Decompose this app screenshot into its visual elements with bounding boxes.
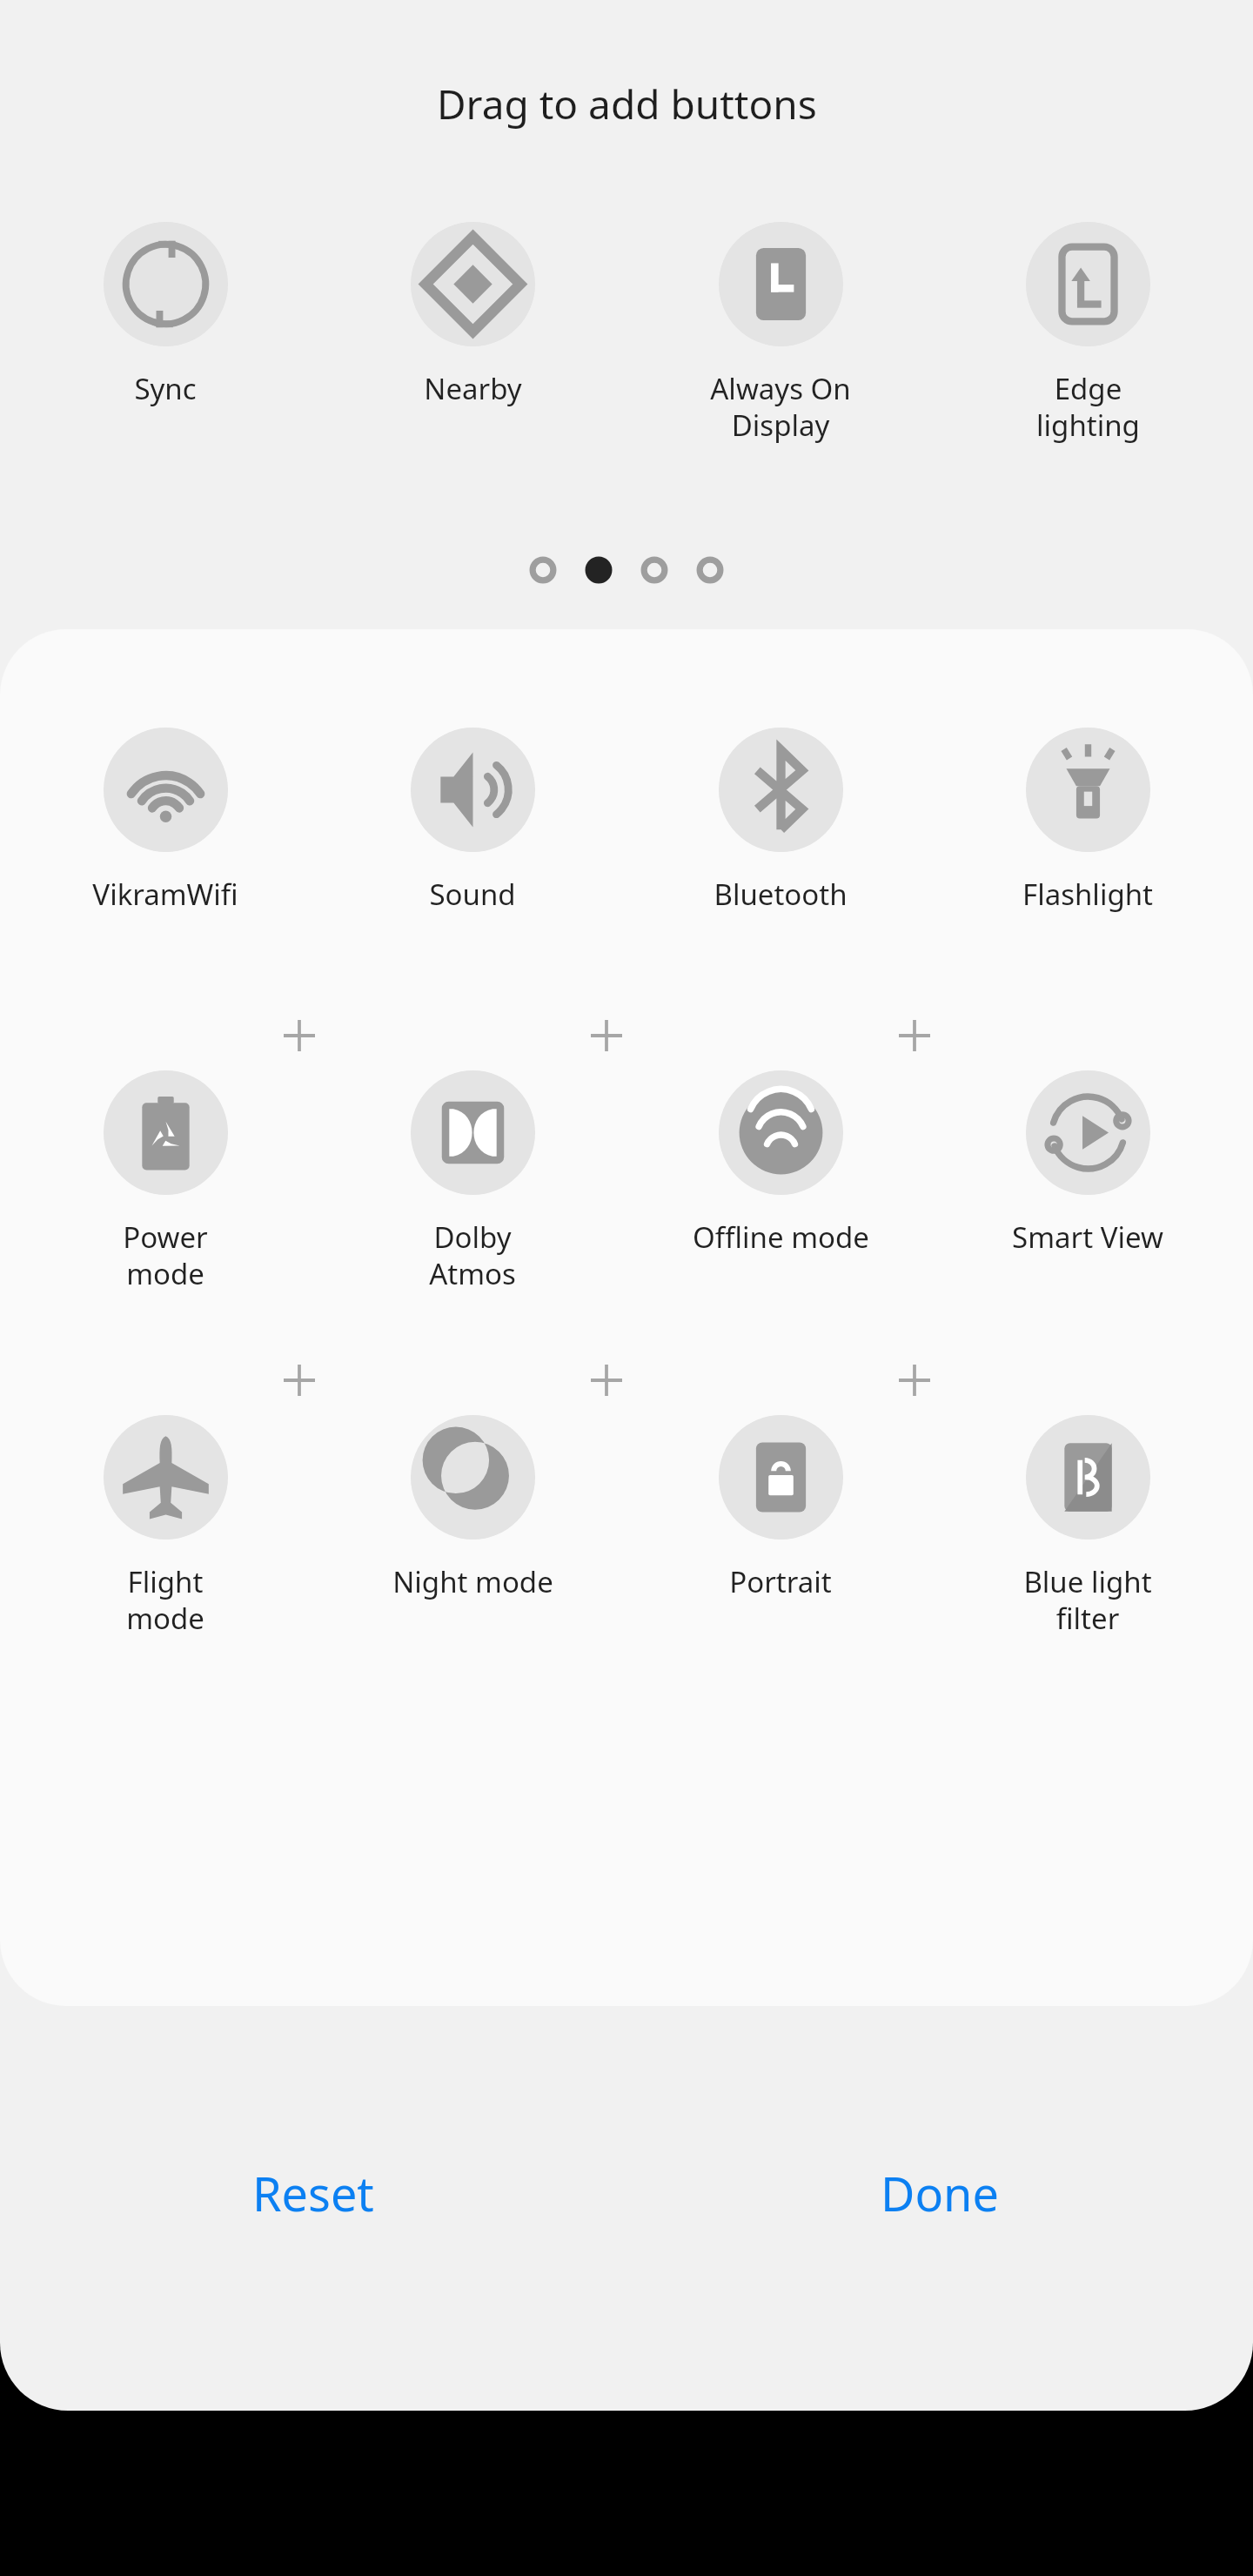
button[interactable] (571, 542, 626, 598)
other: Night mode (411, 1415, 535, 1540)
staticText: Night mode (392, 1562, 553, 1601)
staticText: Dolby Atmos (429, 1218, 516, 1293)
button[interactable]: Reset (0, 2128, 626, 2258)
button[interactable]: Done (626, 2128, 1253, 2258)
other: VikramWifi (104, 728, 228, 852)
other: Power mode (104, 1070, 228, 1195)
staticText: Portrait (729, 1562, 832, 1601)
button[interactable]: Portrait (650, 1415, 911, 1601)
other: Dolby Atmos (411, 1070, 535, 1195)
staticText: Offline mode (693, 1218, 869, 1257)
other: Bluetooth (719, 728, 843, 852)
button[interactable]: Flashlight (957, 728, 1218, 914)
button[interactable]: Nearby (342, 222, 603, 408)
staticText: Smart View (1012, 1218, 1163, 1257)
staticText: Blue light filter (1023, 1562, 1152, 1638)
button[interactable] (515, 542, 571, 598)
button[interactable]: Smart View (957, 1070, 1218, 1257)
staticText: Power mode (123, 1218, 208, 1293)
other: Sound (411, 728, 535, 852)
button[interactable]: Sound (342, 728, 603, 914)
other: Smart View (1026, 1070, 1150, 1195)
button[interactable]: Flight mode (35, 1415, 296, 1638)
other: Flight mode (104, 1415, 228, 1540)
other: Nearby (411, 222, 535, 346)
other: Sync (104, 222, 228, 346)
button[interactable]: VikramWifi (35, 728, 296, 914)
other: Edge lighting (1026, 222, 1150, 346)
staticText: Flight mode (126, 1562, 204, 1638)
staticText: Sync (134, 369, 197, 408)
button[interactable]: Blue light filter (957, 1415, 1218, 1638)
other: Flashlight (1026, 728, 1150, 852)
button[interactable]: Offline mode (650, 1070, 911, 1257)
other: Portrait (719, 1415, 843, 1540)
staticText: Done (881, 2161, 999, 2225)
button[interactable] (626, 542, 682, 598)
staticText: Nearby (424, 369, 522, 408)
staticText: VikramWifi (92, 875, 238, 914)
button[interactable]: Power mode (35, 1070, 296, 1293)
staticText: Drag to add buttons (437, 77, 817, 131)
staticText: Always On Display (710, 369, 851, 445)
button[interactable]: Sync (35, 222, 296, 408)
button[interactable]: Edge lighting (957, 222, 1218, 445)
staticText: Sound (429, 875, 516, 914)
button[interactable] (682, 542, 738, 598)
staticText: Bluetooth (714, 875, 848, 914)
button[interactable]: Always On Display (650, 222, 911, 445)
staticText: Edge lighting (1036, 369, 1140, 445)
staticText: Reset (252, 2161, 374, 2225)
other: Always On Display (719, 222, 843, 346)
button[interactable]: Bluetooth (650, 728, 911, 914)
button[interactable]: Night mode (342, 1415, 603, 1601)
other: Blue light filter (1026, 1415, 1150, 1540)
button[interactable]: Dolby Atmos (342, 1070, 603, 1293)
other: Offline mode (719, 1070, 843, 1195)
staticText: Flashlight (1022, 875, 1153, 914)
